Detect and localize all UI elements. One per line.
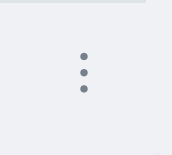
button[interactable]: More options	[80, 53, 88, 93]
